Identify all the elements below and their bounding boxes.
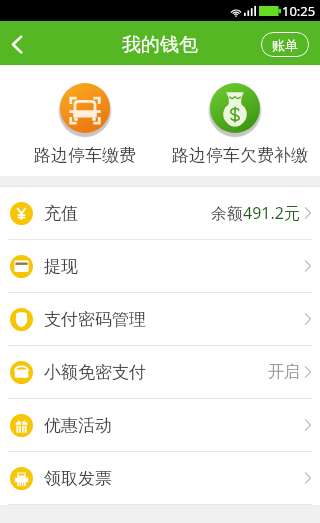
staticText: 充值 — [44, 203, 78, 224]
button[interactable]: 优惠活动 — [0, 399, 320, 451]
staticText: 开启 — [268, 362, 300, 382]
button[interactable]: 路边停车缴费 — [5, 65, 165, 176]
button[interactable]: 领取发票 — [0, 452, 320, 504]
staticText: 提现 — [44, 256, 78, 277]
button[interactable]: 小额免密支付 — [0, 346, 320, 398]
staticText: 余额491.2元 — [211, 202, 300, 224]
button[interactable]: 提现 — [0, 240, 320, 292]
staticText: 账单 — [272, 37, 298, 53]
staticText: 10:25 — [282, 2, 316, 20]
staticText: 支付密码管理 — [44, 309, 146, 330]
staticText: 路边停车缴费 — [5, 145, 165, 166]
button[interactable]: 充值 — [0, 187, 320, 239]
button[interactable]: Back — [0, 21, 40, 65]
staticText: 领取发票 — [44, 468, 112, 489]
staticText: 优惠活动 — [44, 415, 112, 436]
staticText: 我的钱包 — [122, 33, 198, 57]
button[interactable]: 账单 — [261, 32, 309, 57]
button[interactable]: 路边停车欠费补缴 — [160, 65, 320, 176]
staticText: 路边停车欠费补缴 — [160, 145, 320, 166]
staticText: 小额免密支付 — [44, 362, 146, 383]
button[interactable]: 支付密码管理 — [0, 293, 320, 345]
